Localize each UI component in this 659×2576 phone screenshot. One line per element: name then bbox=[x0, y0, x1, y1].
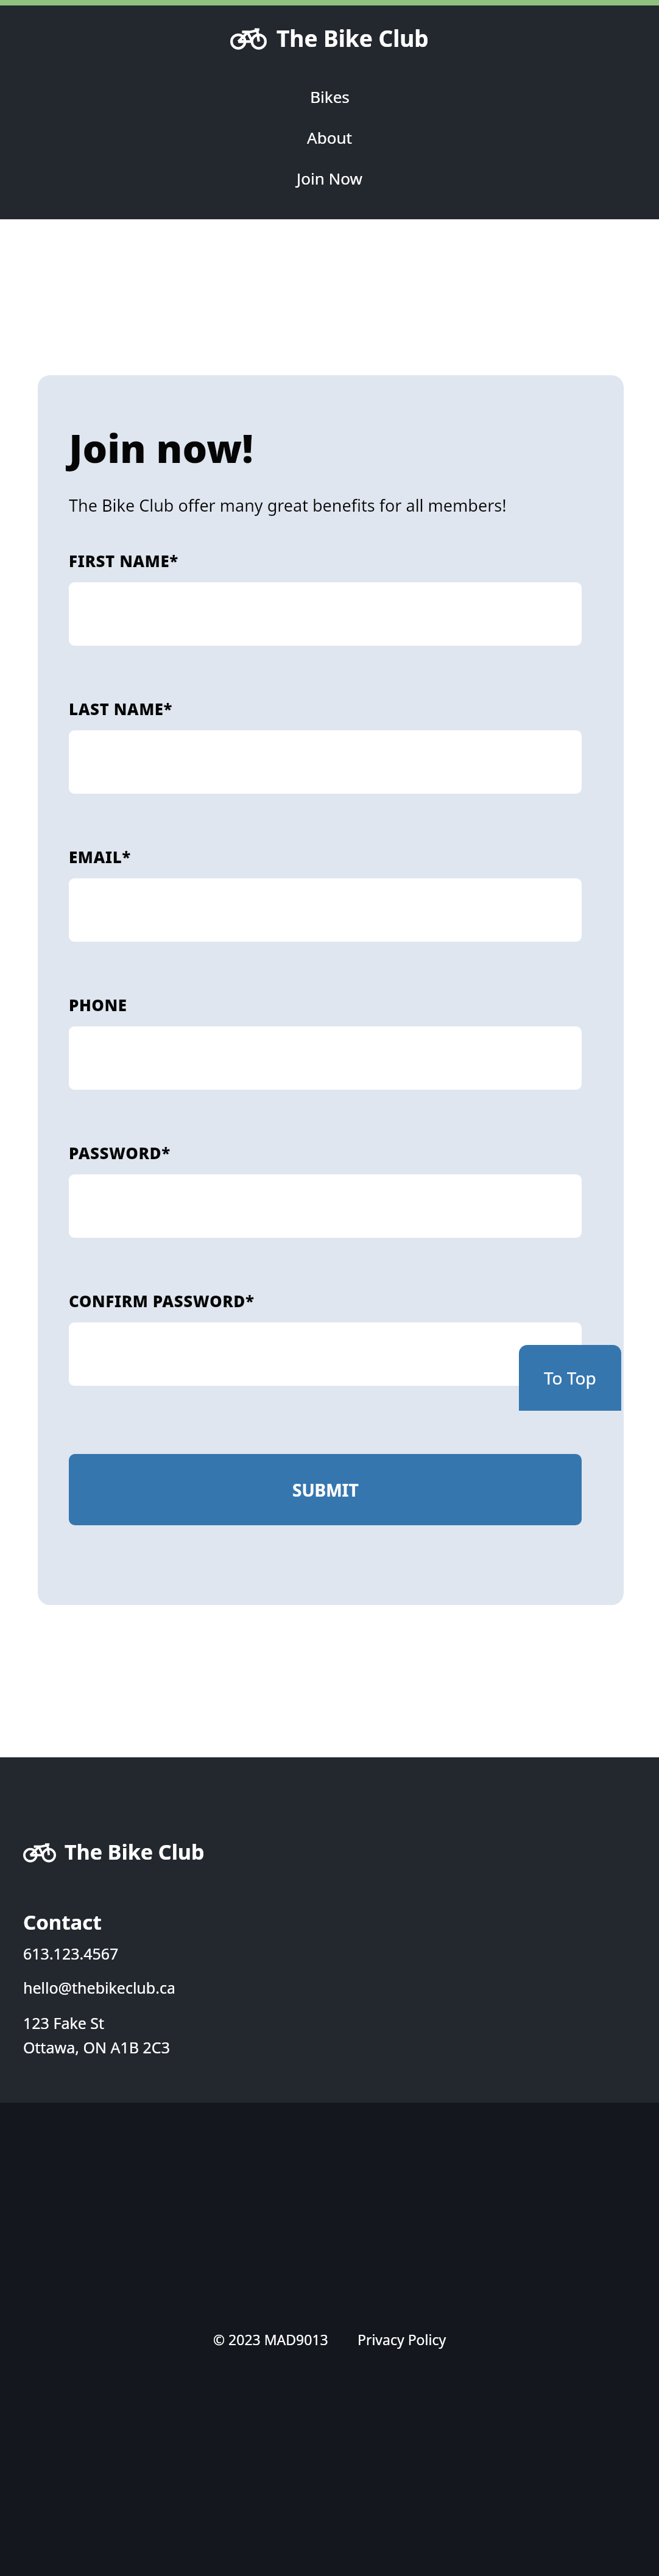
button[interactable]: To Top bbox=[519, 1345, 621, 1411]
staticText: SUBMIT bbox=[292, 1478, 359, 1501]
button[interactable] bbox=[69, 1026, 582, 1090]
staticText: CONFIRM PASSWORD* bbox=[69, 1290, 255, 1311]
staticText: 613.123.4567 bbox=[23, 1943, 119, 1964]
button[interactable]: Privacy Policy bbox=[358, 2330, 446, 2349]
button[interactable] bbox=[69, 878, 582, 942]
staticText: The Bike Club bbox=[65, 1838, 205, 1866]
button[interactable] bbox=[69, 730, 582, 794]
staticText: About bbox=[307, 127, 352, 148]
staticText: FIRST NAME* bbox=[69, 550, 178, 571]
button[interactable]: The Bike Club logo bbox=[225, 20, 434, 55]
button[interactable]: Join Now bbox=[0, 158, 659, 199]
button[interactable]: Bikes bbox=[0, 76, 659, 117]
staticText: The Bike Club offer many great benefits … bbox=[69, 494, 507, 517]
staticText: Join Now bbox=[297, 168, 362, 189]
button[interactable]: About bbox=[0, 117, 659, 158]
staticText: Privacy Policy bbox=[358, 2330, 446, 2349]
staticText: Ottawa, ON A1B 2C3 bbox=[23, 2037, 170, 2058]
staticText: Contact bbox=[23, 1908, 102, 1936]
button[interactable]: SUBMIT bbox=[69, 1454, 582, 1525]
staticText: To Top bbox=[544, 1366, 596, 1389]
staticText: LAST NAME* bbox=[69, 698, 173, 719]
staticText: Bikes bbox=[310, 86, 350, 107]
staticText: hello@thebikeclub.ca bbox=[23, 1977, 175, 1998]
button[interactable] bbox=[69, 582, 582, 646]
other: The Bike Club logo bbox=[230, 27, 267, 49]
other: The Bike Club logo bbox=[23, 1842, 56, 1862]
staticText: Join now! bbox=[69, 422, 253, 475]
staticText: EMAIL* bbox=[69, 846, 131, 867]
staticText: The Bike Club bbox=[277, 23, 429, 53]
button[interactable] bbox=[69, 1174, 582, 1238]
staticText: © 2023 MAD9013 bbox=[213, 2330, 328, 2349]
button[interactable]: The Bike Club logo bbox=[23, 1838, 205, 1866]
staticText: PHONE bbox=[69, 994, 127, 1015]
staticText: PASSWORD* bbox=[69, 1142, 171, 1163]
staticText: 123 Fake St bbox=[23, 2013, 105, 2033]
button[interactable] bbox=[69, 1322, 582, 1386]
